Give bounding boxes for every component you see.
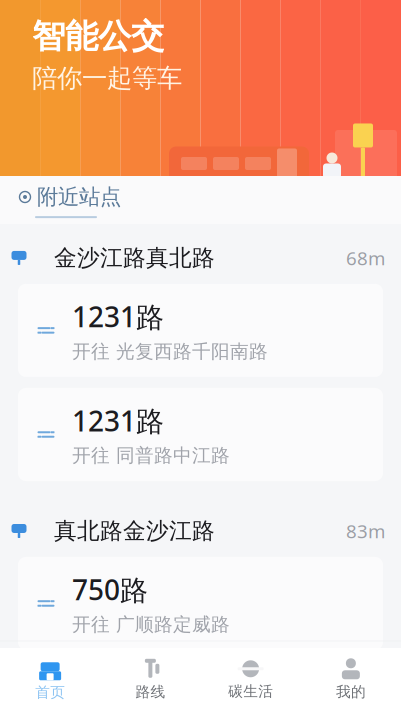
staticText: 路线 — [135, 683, 165, 701]
staticText: 1231路 — [72, 298, 164, 335]
button[interactable]: 真北路金沙江路 — [0, 507, 401, 555]
staticText: 首页 — [35, 683, 65, 701]
staticText: 碳生活 — [228, 682, 273, 700]
button[interactable]: 750路 — [18, 557, 383, 650]
button[interactable]: 首页 — [0, 649, 100, 709]
button[interactable]: 1231路 — [18, 284, 383, 377]
staticText: 开往 广顺路定威路 — [72, 613, 230, 636]
staticText: 750路 — [72, 571, 148, 608]
button[interactable]: 碳生活 — [200, 650, 301, 708]
button[interactable]: 金沙江路真北路 — [0, 234, 401, 282]
staticText: 83m — [346, 519, 385, 543]
staticText: 金沙江路真北路 — [54, 244, 215, 272]
staticText: 开往 光复西路千阳南路 — [72, 340, 268, 363]
staticText: 68m — [346, 245, 385, 270]
staticText: 附近站点 — [37, 184, 121, 210]
button[interactable]: 我的 — [301, 650, 401, 709]
button[interactable]: 附近站点 — [0, 174, 121, 218]
staticText: 我的 — [336, 683, 366, 701]
button[interactable]: 路线 — [100, 650, 200, 709]
staticText: 真北路金沙江路 — [54, 517, 215, 545]
staticText: 1231路 — [72, 402, 164, 439]
staticText: 开往 同普路中江路 — [72, 444, 230, 467]
staticText: 智能公交 — [32, 16, 164, 57]
button[interactable]: 1231路 — [18, 388, 383, 481]
staticText: 陪你一起等车 — [32, 63, 182, 94]
